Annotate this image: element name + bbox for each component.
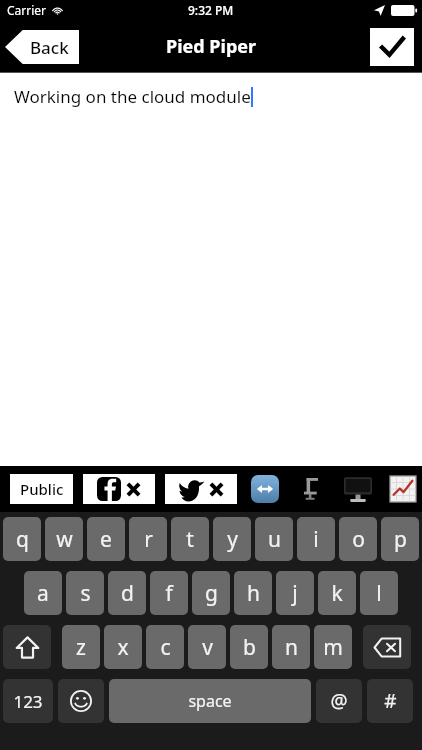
staticText: z: [76, 633, 86, 662]
staticText: k: [331, 579, 343, 608]
staticText: o: [352, 525, 365, 554]
button[interactable]: j: [276, 571, 314, 615]
button[interactable]: m: [314, 625, 352, 669]
button[interactable]: k: [318, 571, 356, 615]
staticText: l: [376, 579, 382, 608]
staticText: v: [202, 633, 213, 662]
staticText: r: [144, 525, 153, 554]
button[interactable]: g: [192, 571, 230, 615]
staticText: #: [384, 688, 397, 714]
button[interactable]: Sync: [251, 475, 279, 503]
button[interactable]: Public: [10, 474, 73, 504]
staticText: @: [330, 688, 348, 714]
staticText: f: [165, 579, 173, 608]
staticText: g: [205, 579, 218, 608]
button[interactable]: v: [188, 625, 226, 669]
button[interactable]: b: [230, 625, 268, 669]
button[interactable]: d: [108, 571, 146, 615]
button[interactable]: Facebook off: [83, 474, 155, 504]
staticText: d: [121, 579, 134, 608]
staticText: y: [227, 525, 238, 554]
button[interactable]: Twitter off: [165, 474, 237, 504]
staticText: c: [160, 633, 171, 662]
button[interactable]: n: [272, 625, 310, 669]
button[interactable]: i: [297, 517, 335, 561]
button[interactable]: Done: [370, 28, 414, 66]
button[interactable]: o: [339, 517, 377, 561]
button[interactable]: space: [109, 679, 311, 723]
staticText: q: [16, 525, 29, 554]
button[interactable]: e: [87, 517, 125, 561]
button[interactable]: #: [367, 679, 413, 723]
staticText: Pied Piper: [166, 34, 257, 59]
staticText: Back: [30, 36, 69, 59]
button[interactable]: a: [24, 571, 62, 615]
staticText: w: [56, 525, 73, 554]
staticText: x: [117, 633, 129, 662]
button[interactable]: p: [381, 517, 419, 561]
staticText: Working on the cloud module: [14, 85, 251, 108]
button[interactable]: Clamp: [297, 475, 325, 503]
staticText: j: [292, 579, 298, 608]
staticText: s: [80, 579, 91, 608]
staticText: m: [323, 633, 343, 662]
staticText: i: [313, 525, 319, 554]
button[interactable]: [3, 625, 51, 669]
staticText: b: [243, 633, 256, 662]
button[interactable]: c: [146, 625, 184, 669]
button[interactable]: x: [104, 625, 142, 669]
button[interactable]: w: [45, 517, 83, 561]
staticText: Public: [20, 479, 64, 499]
button[interactable]: [363, 625, 411, 669]
button[interactable]: t: [171, 517, 209, 561]
button[interactable]: l: [360, 571, 398, 615]
staticText: h: [247, 579, 260, 608]
staticText: Carrier: [7, 2, 47, 18]
button[interactable]: Chart: [389, 475, 417, 503]
button[interactable]: 123: [3, 679, 53, 723]
button[interactable]: s: [66, 571, 104, 615]
staticText: u: [268, 525, 281, 554]
staticText: 123: [13, 690, 43, 713]
staticText: a: [37, 579, 49, 608]
staticText: p: [394, 525, 407, 554]
button[interactable]: z: [62, 625, 100, 669]
button[interactable]: q: [3, 517, 41, 561]
staticText: space: [188, 690, 232, 712]
button[interactable]: f: [150, 571, 188, 615]
staticText: n: [285, 633, 298, 662]
staticText: 9:32 PM: [188, 2, 234, 18]
button[interactable]: [58, 679, 104, 723]
button[interactable]: h: [234, 571, 272, 615]
staticText: t: [186, 525, 194, 554]
button[interactable]: Display: [343, 474, 373, 504]
staticText: e: [100, 525, 112, 554]
button[interactable]: r: [129, 517, 167, 561]
button[interactable]: y: [213, 517, 251, 561]
button[interactable]: Back: [5, 30, 79, 64]
button[interactable]: @: [316, 679, 362, 723]
button[interactable]: u: [255, 517, 293, 561]
